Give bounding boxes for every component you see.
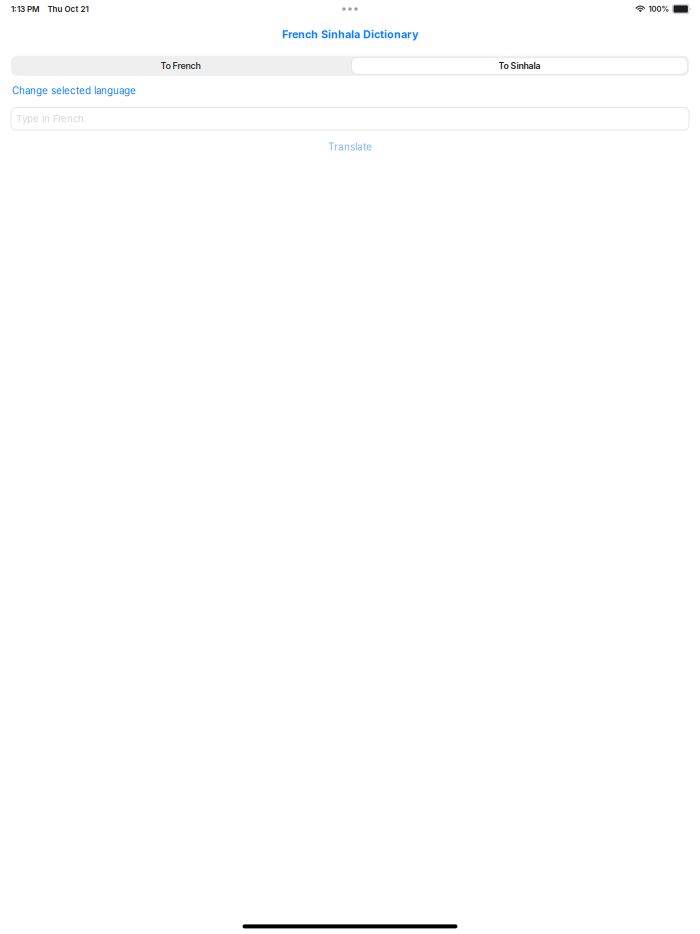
button[interactable]: To Sinhala (350, 56, 689, 76)
staticText: 100% (648, 4, 669, 13)
staticText: Thu Oct 21 (48, 4, 89, 14)
staticText: To French (160, 60, 200, 71)
staticText: Translate (328, 141, 372, 153)
button[interactable]: Change selected language (0, 85, 700, 96)
button[interactable]: To French (11, 56, 350, 76)
button[interactable]: Multitasking Options (333, 1, 367, 17)
button[interactable]: Translate (328, 141, 372, 152)
staticText: To Sinhala (498, 61, 540, 71)
staticText: Change selected language (12, 85, 136, 96)
staticText: Type in French (16, 113, 84, 124)
staticText: 1:13 PM (11, 4, 40, 14)
button[interactable]: Type in French (0, 107, 700, 130)
staticText: French Sinhala Dictionary (282, 28, 418, 41)
